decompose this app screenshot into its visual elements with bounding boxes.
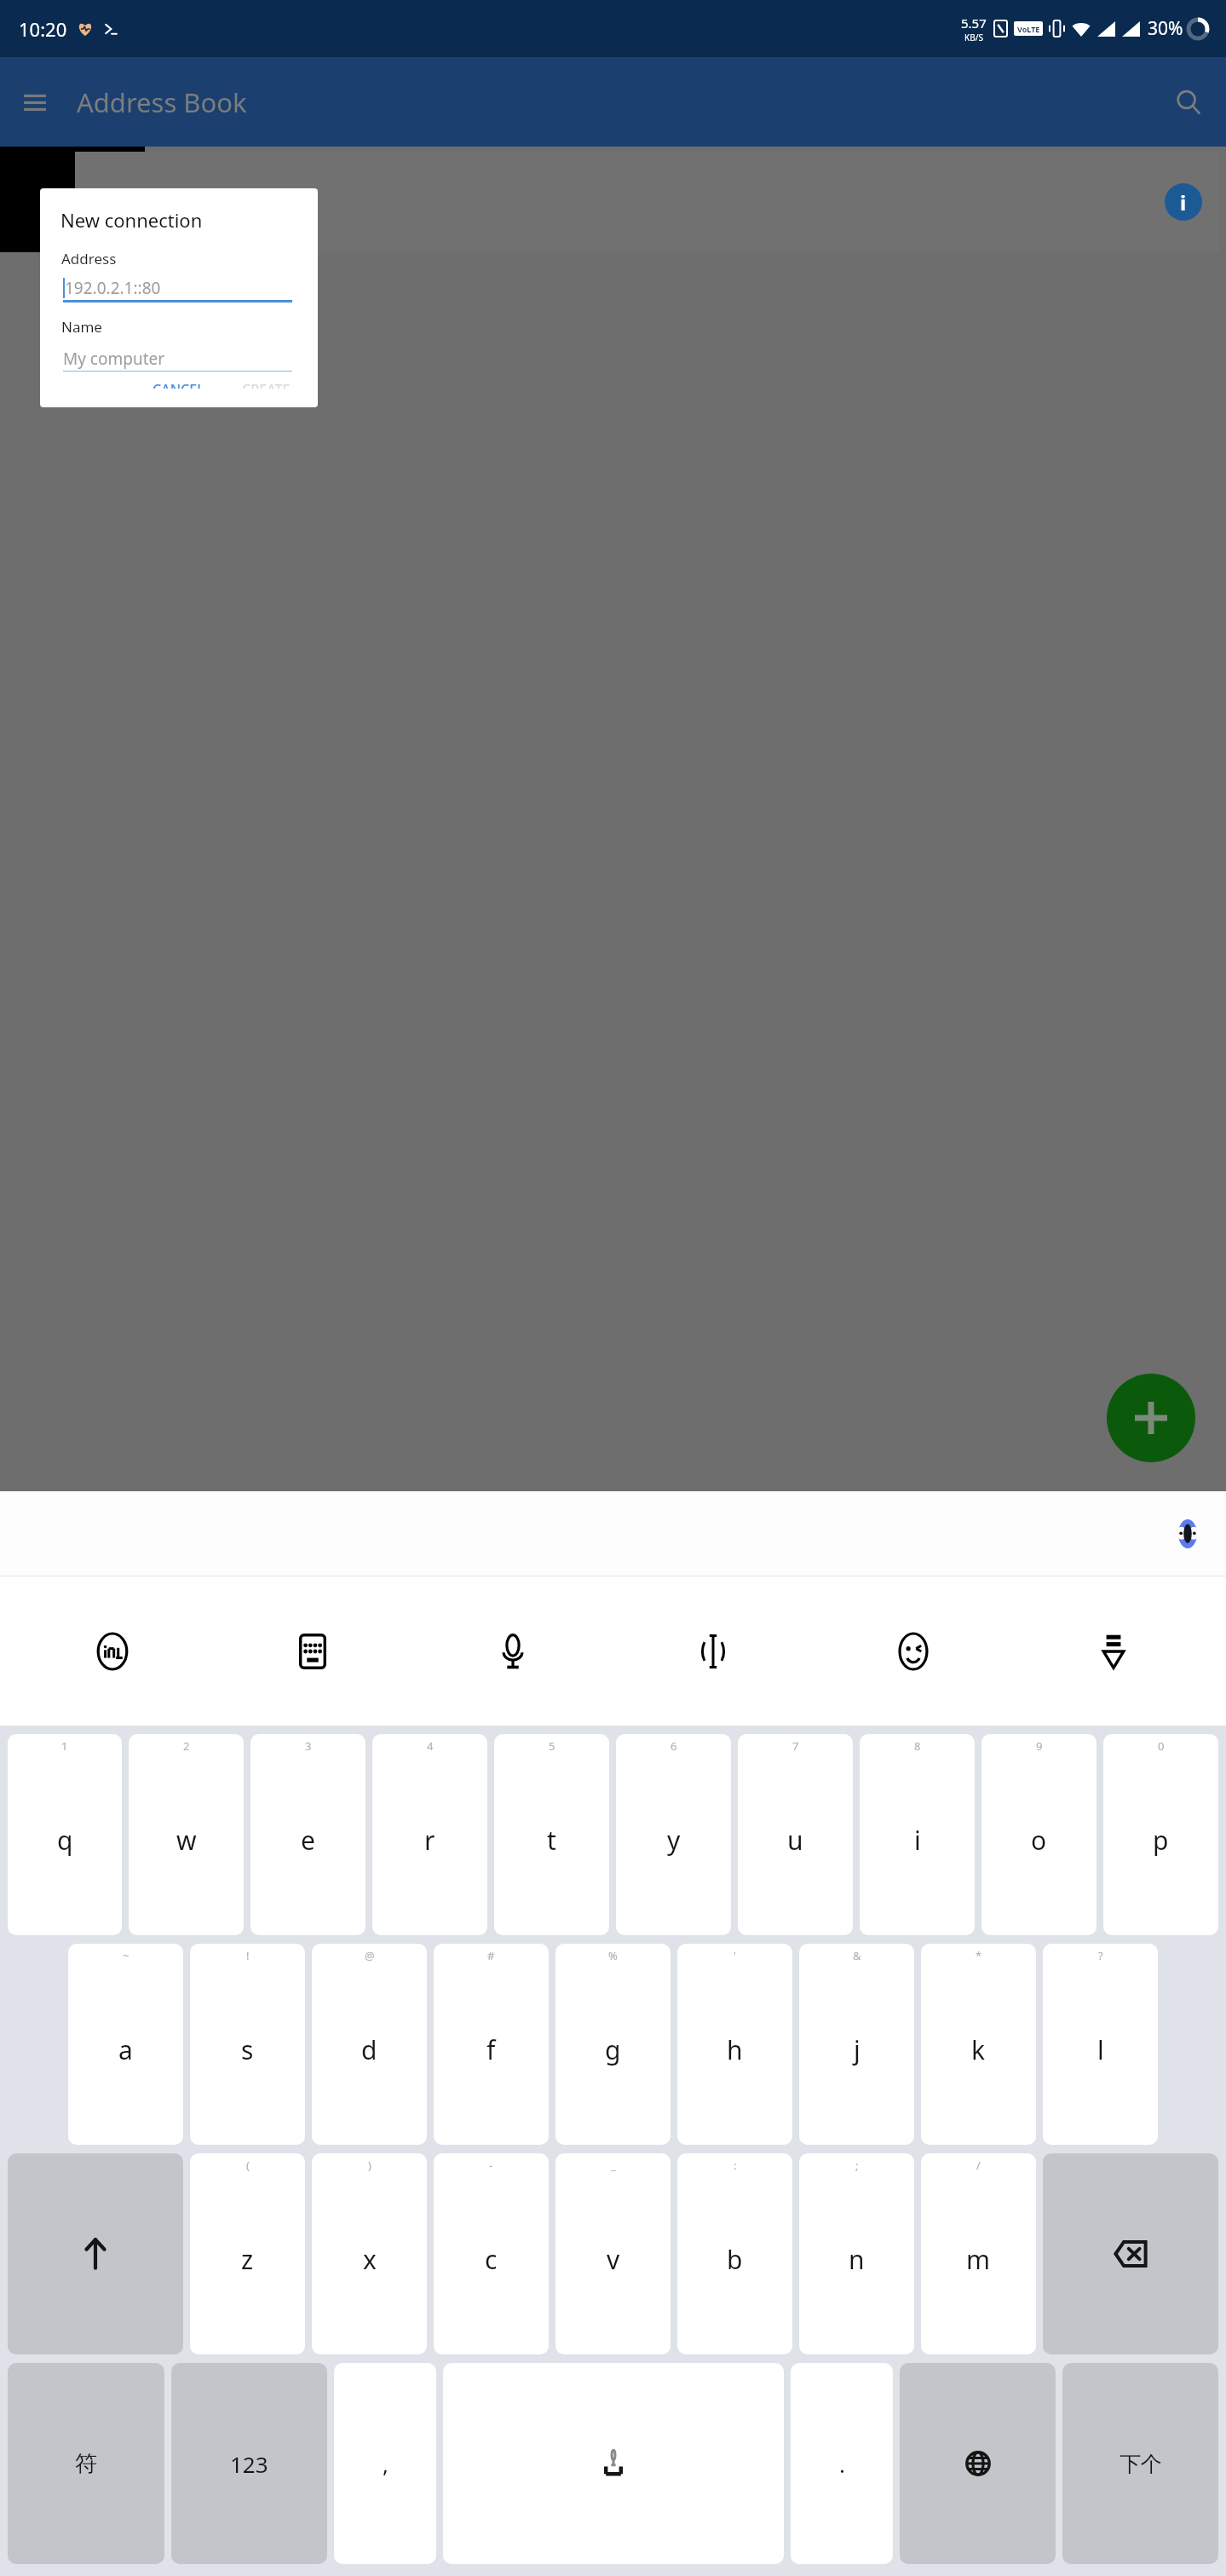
- button[interactable]: Text editing: [685, 1623, 741, 1680]
- staticText: #: [487, 1948, 495, 1963]
- staticText: 5.57: [961, 14, 987, 32]
- staticText: CREATE: [242, 380, 291, 389]
- staticText: r: [424, 1823, 435, 1858]
- button[interactable]: Change language: [900, 2363, 1056, 2564]
- button[interactable]: ?: [1043, 1944, 1158, 2145]
- button[interactable]: (: [190, 2153, 305, 2354]
- staticText: New connection: [60, 207, 203, 233]
- button[interactable]: /: [921, 2153, 1036, 2354]
- button[interactable]: _: [555, 2153, 671, 2354]
- staticText: 192.0.2.1::80: [65, 277, 161, 299]
- button[interactable]: :: [677, 2153, 792, 2354]
- staticText: l: [1097, 2032, 1104, 2067]
- button[interactable]: 8: [860, 1734, 975, 1935]
- button[interactable]: ': [677, 1944, 792, 2145]
- staticText: *: [976, 1948, 982, 1963]
- button[interactable]: Hide keyboard: [1085, 1623, 1142, 1680]
- staticText: !: [246, 1948, 250, 1963]
- staticText: q: [57, 1823, 73, 1858]
- button[interactable]: 1: [8, 1734, 122, 1935]
- button[interactable]: ): [312, 2153, 427, 2354]
- button[interactable]: My computer: [63, 346, 292, 372]
- button[interactable]: 5: [494, 1734, 609, 1935]
- button[interactable]: *: [921, 1944, 1036, 2145]
- staticText: v: [607, 2242, 620, 2277]
- button[interactable]: .: [791, 2363, 893, 2564]
- button[interactable]: Search: [1165, 78, 1212, 126]
- staticText: KB/S: [964, 32, 983, 43]
- button[interactable]: 4: [372, 1734, 487, 1935]
- button[interactable]: Keyboard layout: [285, 1623, 341, 1680]
- staticText: .: [839, 2449, 845, 2479]
- staticText: a: [118, 2032, 133, 2067]
- button[interactable]: ,: [334, 2363, 436, 2564]
- button[interactable]: Shift: [8, 2153, 183, 2354]
- staticText: 5: [549, 1738, 555, 1754]
- staticText: i: [914, 1823, 921, 1858]
- button[interactable]: -: [434, 2153, 549, 2354]
- button[interactable]: Info: [1165, 183, 1202, 221]
- staticText: 6: [671, 1738, 677, 1754]
- staticText: :: [734, 2158, 737, 2173]
- staticText: ?: [1098, 1948, 1103, 1963]
- staticText: Name: [61, 317, 102, 337]
- button[interactable]: 192.0.2.1::80: [63, 277, 292, 303]
- button[interactable]: Backspace: [1043, 2153, 1218, 2354]
- staticText: %: [608, 1948, 618, 1963]
- staticText: My computer: [63, 348, 165, 370]
- staticText: t: [547, 1823, 556, 1858]
- staticText: 3: [305, 1738, 312, 1754]
- staticText: i: [1180, 188, 1187, 216]
- button[interactable]: ~: [68, 1944, 183, 2145]
- staticText: 9: [1036, 1738, 1043, 1754]
- staticText: 符: [75, 2450, 97, 2478]
- button[interactable]: @: [312, 1944, 427, 2145]
- staticText: n: [849, 2242, 865, 2277]
- button[interactable]: 2: [129, 1734, 244, 1935]
- button[interactable]: !: [190, 1944, 305, 2145]
- staticText: ;: [855, 2158, 859, 2173]
- staticText: ~: [123, 1948, 130, 1963]
- button[interactable]: Open navigation drawer: [12, 79, 58, 125]
- staticText: VoLTE: [1017, 24, 1040, 34]
- staticText: m: [966, 2242, 991, 2277]
- button[interactable]: &: [799, 1944, 914, 2145]
- button[interactable]: 0: [1103, 1734, 1218, 1935]
- staticText: 下个: [1120, 2451, 1162, 2477]
- staticText: 7: [792, 1738, 799, 1754]
- button[interactable]: 符: [8, 2363, 164, 2564]
- staticText: g: [605, 2032, 621, 2067]
- staticText: 123: [230, 2449, 268, 2479]
- button[interactable]: CANCEL: [141, 372, 216, 397]
- staticText: z: [241, 2242, 254, 2277]
- staticText: b: [727, 2242, 743, 2277]
- staticText: e: [301, 1823, 315, 1858]
- staticText: o: [1031, 1823, 1047, 1858]
- staticText: 30%: [1148, 16, 1183, 41]
- button[interactable]: 3: [250, 1734, 365, 1935]
- staticText: 10:20: [19, 16, 67, 42]
- staticText: 4: [427, 1738, 434, 1754]
- staticText: p: [1153, 1823, 1169, 1858]
- button[interactable]: 7: [738, 1734, 853, 1935]
- button[interactable]: Input method: [84, 1623, 141, 1680]
- button[interactable]: 123: [171, 2363, 327, 2564]
- button[interactable]: Voice input: [485, 1623, 541, 1680]
- button[interactable]: Space: [443, 2363, 784, 2564]
- button[interactable]: 9: [981, 1734, 1096, 1935]
- button[interactable]: #: [434, 1944, 549, 2145]
- button[interactable]: 6: [616, 1734, 731, 1935]
- button[interactable]: ;: [799, 2153, 914, 2354]
- staticText: &: [853, 1948, 861, 1963]
- button[interactable]: %: [555, 1944, 671, 2145]
- button[interactable]: 下个: [1062, 2363, 1218, 2564]
- staticText: -: [489, 2158, 493, 2173]
- button[interactable]: Add connection: [1107, 1374, 1195, 1462]
- staticText: h: [727, 2032, 743, 2067]
- staticText: 8: [914, 1738, 921, 1754]
- staticText: w: [176, 1823, 197, 1858]
- button[interactable]: CREATE: [230, 372, 302, 397]
- button[interactable]: Emoji: [885, 1623, 941, 1680]
- button[interactable]: Assistant: [1173, 1519, 1202, 1548]
- button[interactable]: Info: [75, 152, 1219, 252]
